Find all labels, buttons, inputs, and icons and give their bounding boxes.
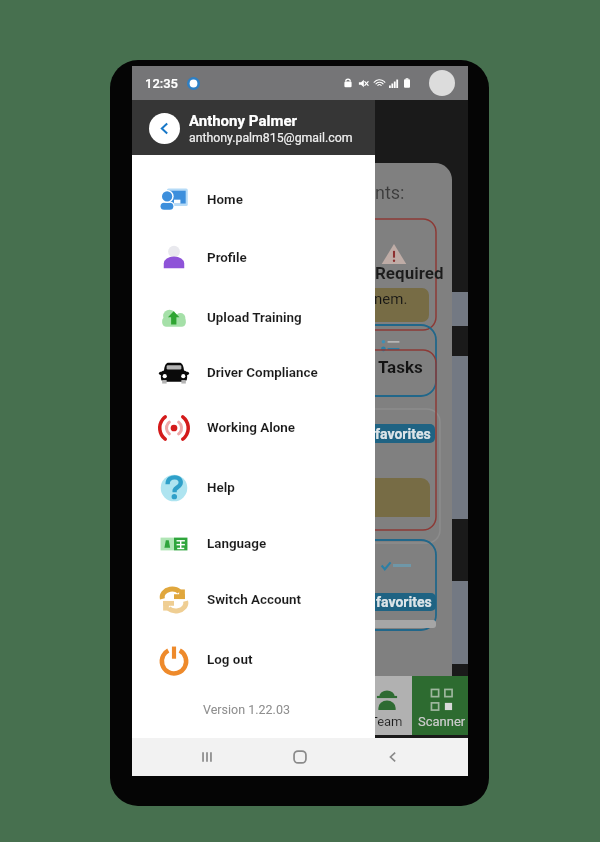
- staticText: Anthony Palmer: [189, 112, 297, 130]
- staticText: anthony.palm815@gmail.com: [189, 131, 353, 145]
- button[interactable]: Home: [282, 739, 318, 775]
- staticText: Language: [207, 536, 267, 552]
- staticText: Log out: [207, 652, 253, 668]
- button[interactable]: Language: [132, 516, 375, 572]
- button[interactable]: Profile: [132, 230, 375, 286]
- staticText: e favorites: [365, 594, 432, 610]
- staticText: Upload Training: [207, 310, 302, 326]
- staticText: nem.: [374, 290, 408, 308]
- button[interactable]: Back: [149, 113, 180, 144]
- staticText: Help: [207, 480, 235, 496]
- button[interactable]: Working Alone: [132, 400, 375, 456]
- staticText: Profile: [207, 250, 247, 266]
- staticText: Working Alone: [207, 420, 296, 436]
- staticText: Home: [207, 192, 243, 208]
- staticText: Team: [370, 714, 403, 729]
- staticText: e favorites: [364, 426, 431, 442]
- button[interactable]: Help: [132, 460, 375, 516]
- button[interactable]: Switch Account: [132, 572, 375, 628]
- button[interactable]: Driver Compliance: [132, 345, 375, 401]
- button[interactable]: Recent apps: [189, 739, 225, 775]
- staticText: Required: [375, 263, 444, 283]
- staticText: Driver Compliance: [207, 365, 318, 381]
- staticText: Tasks: [378, 357, 423, 377]
- staticText: nts:: [375, 182, 405, 203]
- button[interactable]: Log out: [132, 632, 375, 688]
- staticText: Version 1.22.03: [125, 702, 368, 717]
- button[interactable]: Upload Training: [132, 290, 375, 346]
- button[interactable]: Back: [375, 739, 411, 775]
- staticText: Switch Account: [207, 592, 302, 608]
- staticText: 12:35: [145, 76, 179, 91]
- staticText: Scanner: [418, 714, 466, 729]
- button[interactable]: Home: [132, 172, 375, 228]
